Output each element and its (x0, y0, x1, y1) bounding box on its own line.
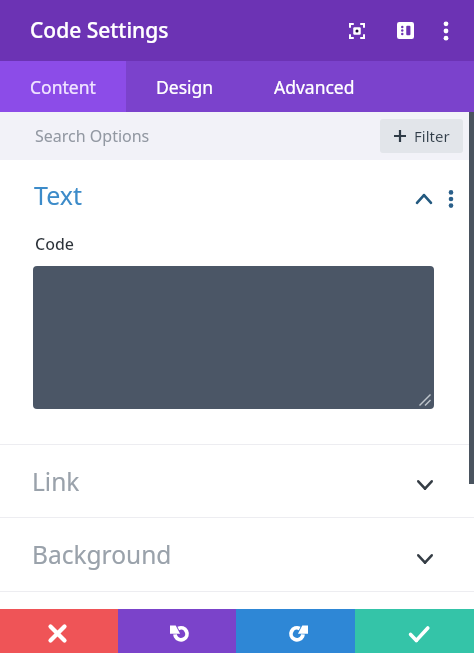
button[interactable]: Filter (380, 119, 463, 153)
button[interactable]: Focus (335, 0, 379, 61)
staticText: Design (156, 75, 214, 99)
button[interactable]: Text (0, 166, 474, 224)
staticText: Content (30, 75, 96, 99)
button[interactable]: Undo (118, 609, 236, 653)
staticText: Link (32, 465, 80, 498)
button[interactable]: Layout (386, 0, 424, 61)
staticText: Text (34, 178, 83, 212)
button[interactable]: Save (355, 609, 474, 653)
staticText: Filter (414, 126, 450, 146)
staticText: Code (35, 233, 75, 255)
button[interactable]: Collapse section (412, 178, 436, 220)
button[interactable]: Background (0, 518, 474, 591)
button[interactable]: Link (0, 445, 474, 517)
button[interactable] (33, 266, 434, 409)
button[interactable]: More options (424, 0, 468, 61)
button[interactable]: Content (0, 61, 126, 112)
button[interactable]: Advanced (244, 61, 385, 112)
staticText: Background (32, 538, 172, 571)
button[interactable]: Cancel (0, 609, 118, 653)
staticText: Advanced (274, 75, 355, 99)
button[interactable]: Design (126, 61, 244, 112)
staticText: Search Options (35, 125, 150, 147)
staticText: Code Settings (30, 16, 169, 45)
button[interactable]: Section options (436, 178, 466, 220)
button[interactable]: Redo (236, 609, 355, 653)
